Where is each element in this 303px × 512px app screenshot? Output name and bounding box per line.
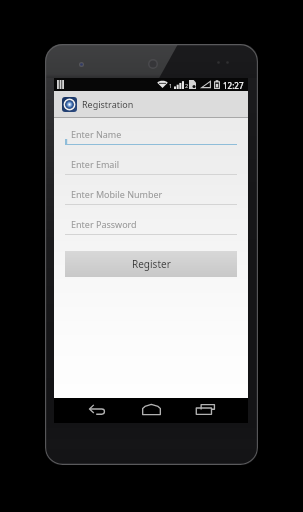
staticText: 1: [169, 82, 173, 89]
staticText: 2: [185, 82, 189, 89]
staticText: Registration: [82, 98, 134, 110]
staticText: 12:27: [223, 80, 244, 91]
button[interactable]: Register: [65, 251, 237, 277]
button[interactable]: Home: [133, 397, 169, 422]
staticText: Enter Mobile Number: [71, 188, 163, 200]
staticText: Register: [132, 257, 171, 271]
staticText: Enter Password: [71, 218, 137, 230]
button[interactable]: Recent apps: [187, 397, 223, 422]
button[interactable]: Back: [79, 397, 115, 422]
button[interactable]: Registration: [54, 91, 248, 117]
button[interactable]: Enter Name: [65, 124, 237, 154]
button[interactable]: Enter Mobile Number: [65, 184, 237, 214]
button[interactable]: Enter Email: [65, 154, 237, 184]
staticText: Enter Name: [71, 128, 122, 140]
staticText: Enter Email: [71, 158, 120, 170]
button[interactable]: Enter Password: [65, 214, 237, 244]
